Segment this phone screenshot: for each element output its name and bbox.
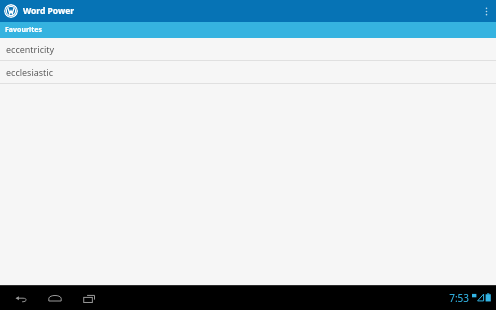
button[interactable]: eccentricity [0,38,496,61]
staticText: 7:53 [449,291,469,305]
staticText: eccentricity [6,43,55,55]
button[interactable]: Recent apps [76,287,102,309]
button[interactable]: Favourites [0,22,496,38]
button[interactable]: Back [8,287,34,309]
button[interactable]: More options [476,0,496,22]
staticText: Favourites [5,25,42,35]
staticText: ecclesiastic [6,66,53,78]
button[interactable]: ecclesiastic [0,61,496,84]
button[interactable]: Home [42,287,68,309]
staticText: Word Power [23,5,75,17]
